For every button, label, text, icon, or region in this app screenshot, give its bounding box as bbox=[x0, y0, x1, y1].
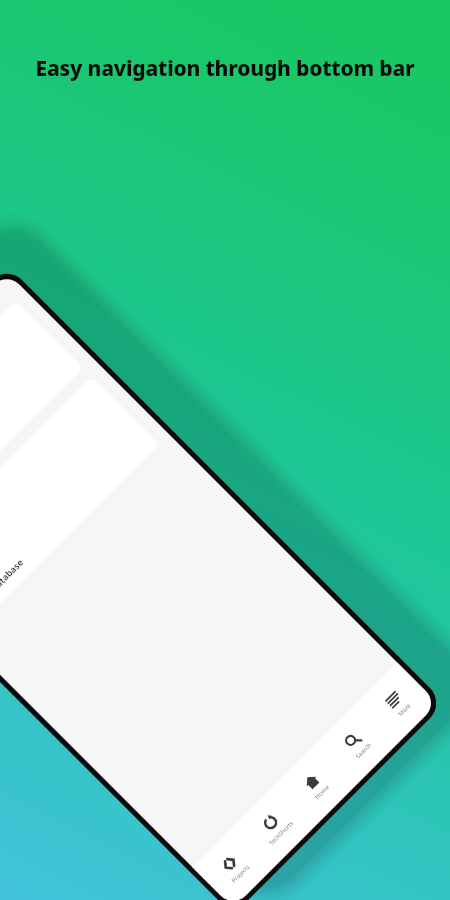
staticText: Home bbox=[313, 783, 331, 801]
button[interactable]: Search bbox=[315, 703, 397, 785]
button[interactable]: More bbox=[356, 662, 438, 744]
button[interactable]: TechShorts bbox=[233, 785, 315, 867]
staticText: Easy navigation through bottom bar bbox=[30, 54, 420, 83]
staticText: Projects bbox=[230, 863, 251, 885]
button[interactable]: Home bbox=[274, 744, 356, 826]
button[interactable]: Vector Database bbox=[0, 376, 160, 630]
staticText: Search bbox=[354, 741, 373, 760]
button[interactable]: Quantum Computing bbox=[0, 300, 83, 553]
staticText: TechShorts bbox=[267, 819, 295, 847]
staticText: Vector Database bbox=[0, 555, 26, 615]
staticText: More bbox=[396, 702, 413, 718]
button[interactable]: Projects bbox=[192, 826, 274, 900]
